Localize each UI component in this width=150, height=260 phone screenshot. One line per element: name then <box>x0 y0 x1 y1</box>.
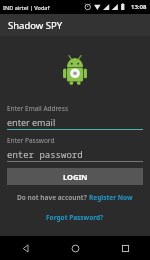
staticText: Shadow SPY <box>8 19 63 32</box>
staticText: LOGIN <box>63 172 88 182</box>
staticText: enter password <box>7 148 83 160</box>
button[interactable]: LOGIN <box>7 168 143 185</box>
button[interactable]: Back <box>0 236 50 260</box>
button[interactable]: enter password <box>7 148 143 162</box>
staticText: Do not have account? <box>17 193 89 202</box>
staticText: Enter Email Address <box>7 104 68 113</box>
staticText: enter email <box>7 116 56 128</box>
staticText: Forgot Password? <box>46 213 104 222</box>
staticText: Enter Password <box>7 136 55 145</box>
button[interactable]: Recent apps <box>100 236 150 260</box>
staticText: 13:08 <box>131 3 147 11</box>
staticText: Register Now <box>89 193 133 202</box>
button[interactable]: Forgot Password? <box>44 211 106 224</box>
button[interactable]: enter email <box>7 116 143 130</box>
staticText: IND airtel | Vodaf <box>3 4 50 11</box>
button[interactable]: Home <box>50 236 100 260</box>
button[interactable]: Register Now <box>89 193 133 202</box>
